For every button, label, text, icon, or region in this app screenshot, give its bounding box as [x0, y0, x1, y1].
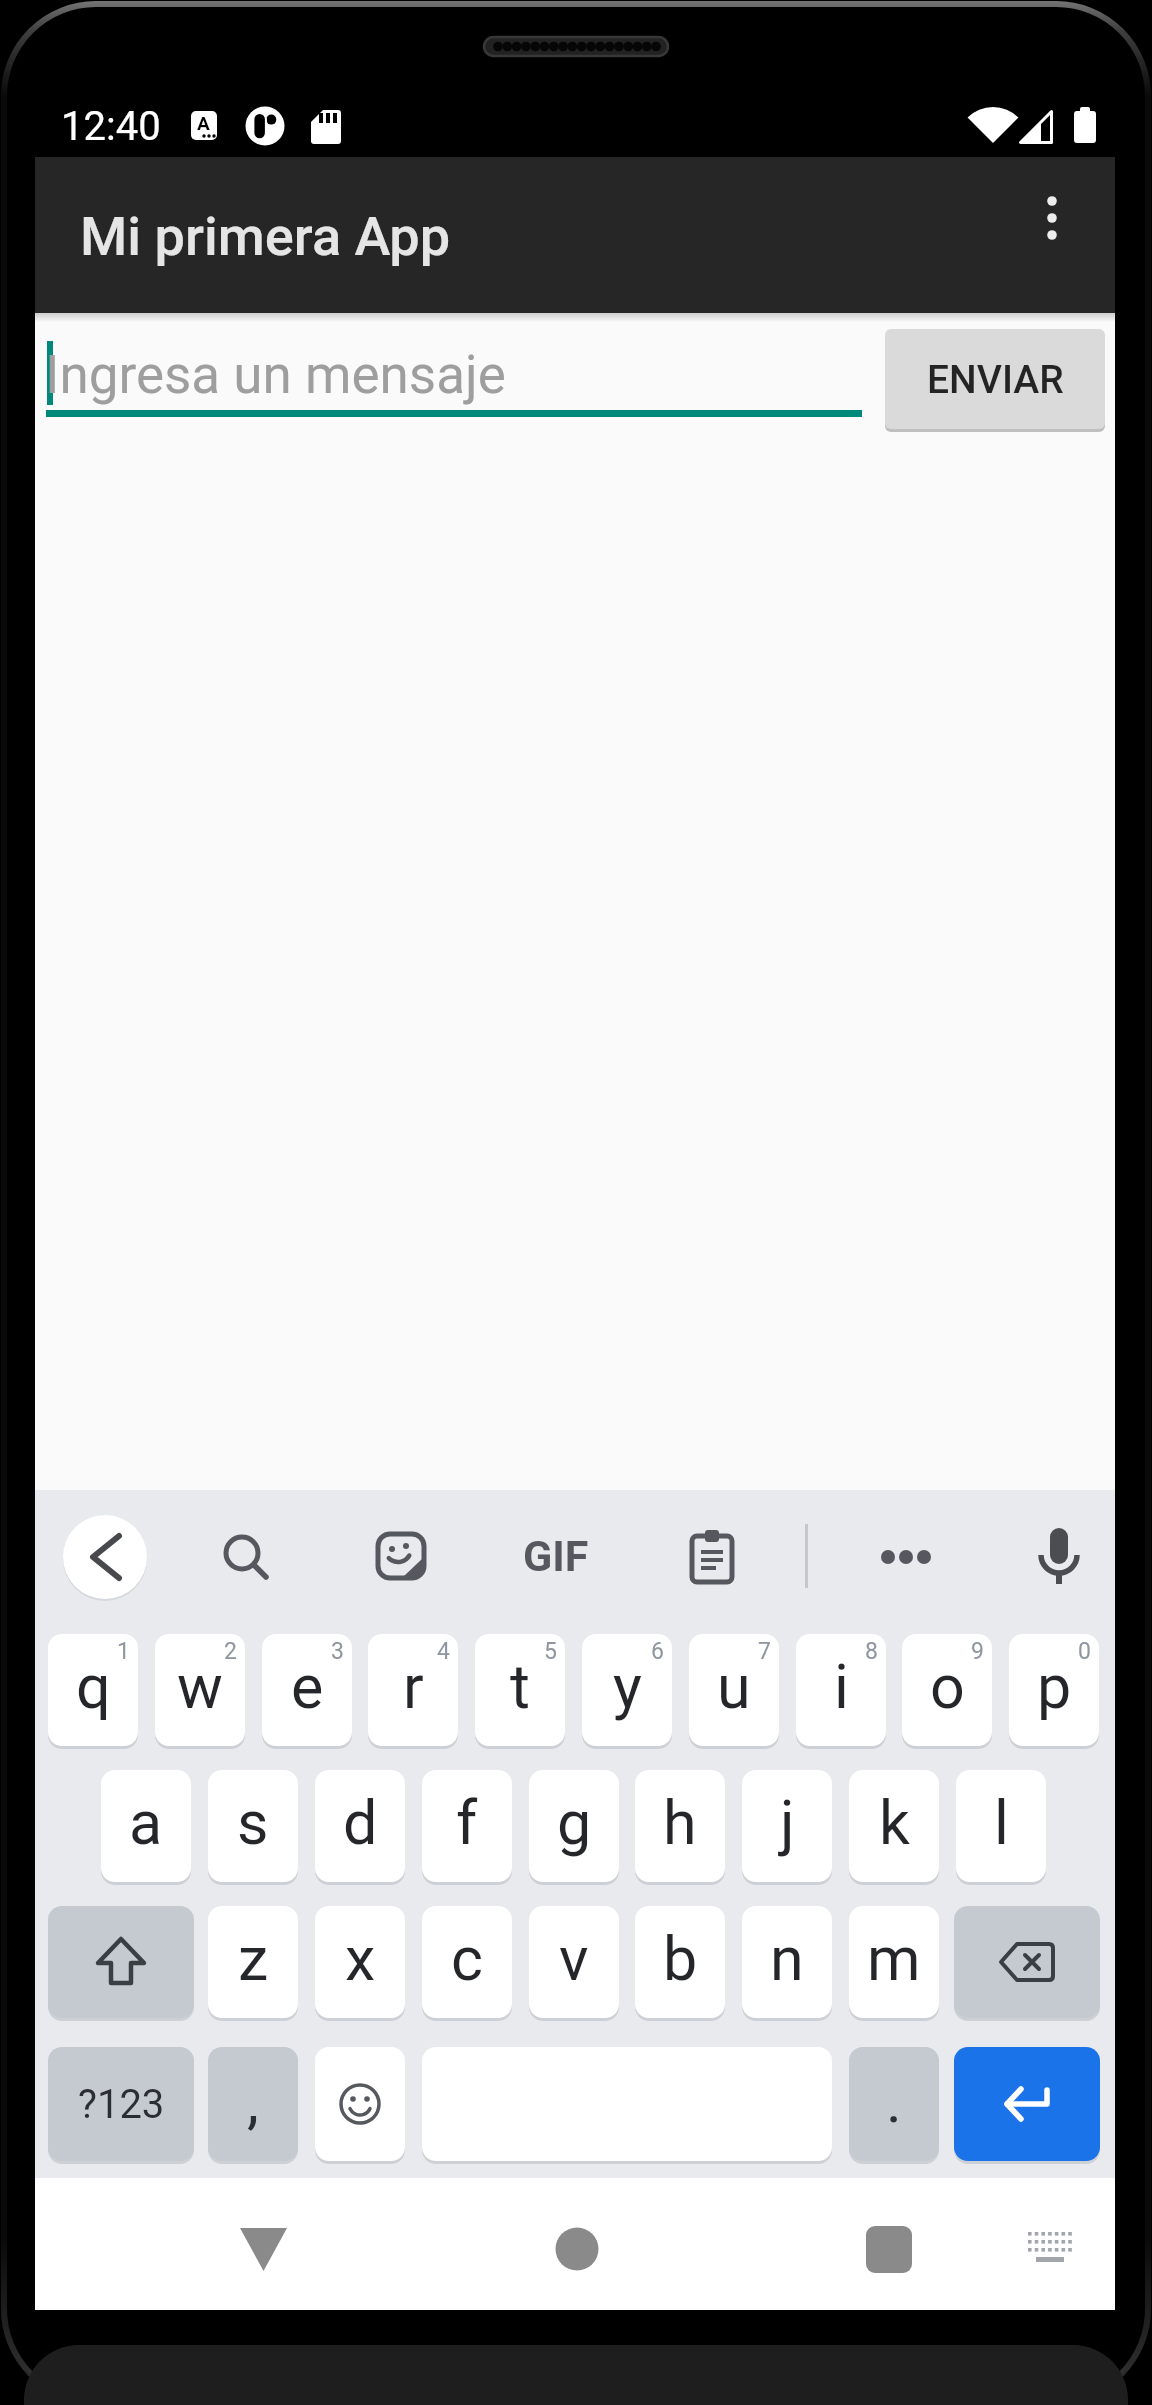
button[interactable]: x	[315, 1906, 405, 2018]
button[interactable]: l	[956, 1770, 1046, 1882]
button[interactable]: s	[208, 1770, 298, 1882]
button[interactable]: t	[475, 1634, 565, 1746]
staticText: l	[994, 1787, 1009, 1858]
button[interactable]: h	[635, 1770, 725, 1882]
staticText: f	[456, 1787, 478, 1858]
button[interactable]: w	[155, 1634, 245, 1746]
button[interactable]: b	[635, 1906, 725, 2018]
staticText: ENVIAR	[927, 357, 1064, 403]
staticText: c	[451, 1923, 483, 1994]
staticText: q	[76, 1651, 111, 1722]
button[interactable]	[954, 1906, 1100, 2018]
button[interactable]	[870, 1533, 942, 1581]
button[interactable]	[315, 2047, 405, 2161]
button[interactable]	[63, 1515, 147, 1599]
button[interactable]: i	[796, 1634, 886, 1746]
button[interactable]: g	[529, 1770, 619, 1882]
staticText: v	[559, 1923, 589, 1994]
staticText: 12:40	[61, 103, 161, 150]
button[interactable]: c	[422, 1906, 512, 2018]
button[interactable]	[1043, 187, 1067, 283]
staticText: 1	[117, 1638, 130, 1665]
staticText: 0	[1078, 1638, 1091, 1665]
staticText: 3	[331, 1638, 344, 1665]
staticText: m	[867, 1923, 921, 1994]
button[interactable]	[240, 2228, 288, 2272]
staticText: n	[770, 1923, 804, 1994]
staticText: A	[197, 112, 210, 134]
staticText: a	[129, 1787, 163, 1858]
staticText: t	[510, 1651, 530, 1722]
staticText: z	[238, 1923, 269, 1994]
button[interactable]: m	[849, 1906, 939, 2018]
staticText: 7	[758, 1638, 771, 1665]
staticText: o	[930, 1651, 965, 1722]
button[interactable]: u	[689, 1634, 779, 1746]
button[interactable]: f	[422, 1770, 512, 1882]
button[interactable]: v	[529, 1906, 619, 2018]
button[interactable]: a	[101, 1770, 191, 1882]
button[interactable]	[1033, 1526, 1085, 1588]
staticText: Ingresa un mensaje	[45, 344, 506, 406]
staticText: Mi primera App	[80, 205, 451, 268]
button[interactable]: ?123	[48, 2047, 194, 2161]
button[interactable]: o	[902, 1634, 992, 1746]
staticText: s	[237, 1787, 269, 1858]
staticText: p	[1037, 1651, 1072, 1722]
button[interactable]: ,	[208, 2047, 298, 2161]
button[interactable]	[954, 2047, 1100, 2161]
staticText: g	[557, 1787, 592, 1858]
button[interactable]: d	[315, 1770, 405, 1882]
staticText: 5	[544, 1638, 557, 1665]
button[interactable]: q	[48, 1634, 138, 1746]
button[interactable]: k	[849, 1770, 939, 1882]
staticText: 8	[865, 1638, 878, 1665]
button[interactable]	[555, 2227, 599, 2271]
staticText: x	[345, 1923, 376, 1994]
staticText: w	[177, 1651, 223, 1722]
staticText: h	[663, 1787, 697, 1858]
staticText: b	[663, 1923, 698, 1994]
button[interactable]: ENVIAR	[885, 329, 1105, 429]
staticText: i	[834, 1651, 849, 1722]
button[interactable]: y	[582, 1634, 672, 1746]
button[interactable]: z	[208, 1906, 298, 2018]
staticText: u	[717, 1651, 751, 1722]
staticText: k	[879, 1787, 910, 1858]
staticText: e	[291, 1651, 324, 1722]
button[interactable]	[1026, 2230, 1074, 2270]
button[interactable]: GIF	[520, 1528, 592, 1584]
button[interactable]	[222, 1533, 270, 1581]
button[interactable]	[866, 2226, 912, 2273]
staticText: ?123	[78, 2081, 165, 2128]
button[interactable]	[376, 1532, 428, 1582]
button[interactable]: p	[1009, 1634, 1099, 1746]
button[interactable]: j	[742, 1770, 832, 1882]
staticText: ,	[247, 2066, 259, 2136]
button[interactable]: .	[849, 2047, 939, 2161]
staticText: 6	[651, 1638, 664, 1665]
button[interactable]: r	[368, 1634, 458, 1746]
staticText: 4	[437, 1638, 450, 1665]
staticText: .	[886, 2066, 902, 2136]
staticText: GIF	[523, 1531, 589, 1581]
staticText: j	[780, 1787, 795, 1858]
button[interactable]	[688, 1530, 736, 1584]
button[interactable]	[48, 1906, 194, 2018]
staticText: 9	[971, 1638, 984, 1665]
button[interactable]: e	[262, 1634, 352, 1746]
staticText: 2	[224, 1638, 237, 1665]
staticText: r	[403, 1651, 424, 1722]
button[interactable]: n	[742, 1906, 832, 2018]
staticText: d	[343, 1787, 378, 1858]
staticText: y	[613, 1651, 642, 1722]
